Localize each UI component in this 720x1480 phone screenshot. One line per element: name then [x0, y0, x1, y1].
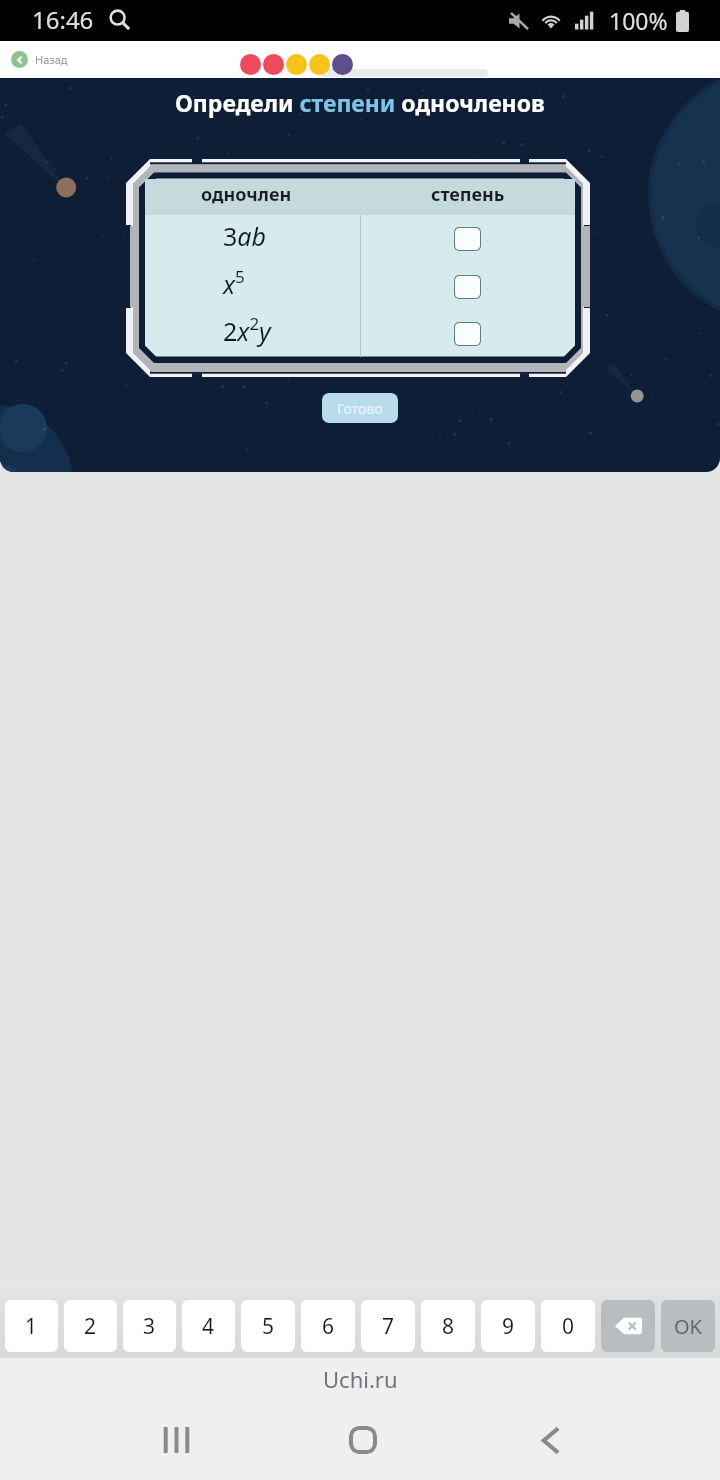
staticText: 8 [442, 1312, 455, 1341]
staticText: Определи степени одночленов [175, 87, 545, 118]
button[interactable]: Ввести степень [454, 227, 481, 251]
staticText: 16:46 [32, 3, 94, 36]
staticText: 100% [609, 5, 668, 36]
staticText: OK [674, 1313, 702, 1340]
staticText: 7 [382, 1312, 395, 1341]
staticText: x5 [223, 265, 245, 302]
staticText: 6 [322, 1312, 335, 1341]
staticText: Готово [337, 399, 383, 418]
button[interactable]: Recents [136, 1400, 216, 1480]
button[interactable]: Home [323, 1400, 403, 1480]
button[interactable]: 2 [64, 1300, 117, 1352]
staticText: 3ab [223, 219, 266, 253]
staticText: 4 [202, 1312, 215, 1341]
staticText: 9 [502, 1312, 515, 1341]
button[interactable]: 7 [361, 1300, 415, 1352]
staticText: 2x2y [223, 312, 271, 349]
button[interactable]: Ввести степень [454, 322, 481, 346]
staticText: одночлен [201, 182, 292, 207]
button[interactable]: 9 [481, 1300, 535, 1352]
button[interactable]: 1 [5, 1300, 58, 1352]
button[interactable]: 4 [182, 1300, 235, 1352]
staticText: 0 [562, 1312, 575, 1341]
staticText: Uchi.ru [323, 1364, 398, 1394]
button[interactable]: 6 [301, 1300, 355, 1352]
button[interactable]: OK [661, 1300, 715, 1352]
button[interactable]: Back [510, 1400, 590, 1480]
staticText: Назад [35, 52, 68, 67]
button[interactable]: Назад [0, 46, 82, 73]
staticText: 2 [84, 1312, 97, 1341]
button[interactable]: 3 [123, 1300, 176, 1352]
button[interactable]: 8 [421, 1300, 475, 1352]
staticText: степень [431, 182, 505, 207]
button[interactable]: 5 [241, 1300, 295, 1352]
button[interactable]: Удалить [601, 1300, 655, 1352]
staticText: 1 [25, 1312, 38, 1341]
button[interactable]: Ввести степень [454, 275, 481, 299]
staticText: 5 [262, 1312, 275, 1341]
button[interactable]: Готово [322, 393, 398, 423]
button[interactable]: 0 [541, 1300, 595, 1352]
staticText: 3 [143, 1312, 156, 1341]
